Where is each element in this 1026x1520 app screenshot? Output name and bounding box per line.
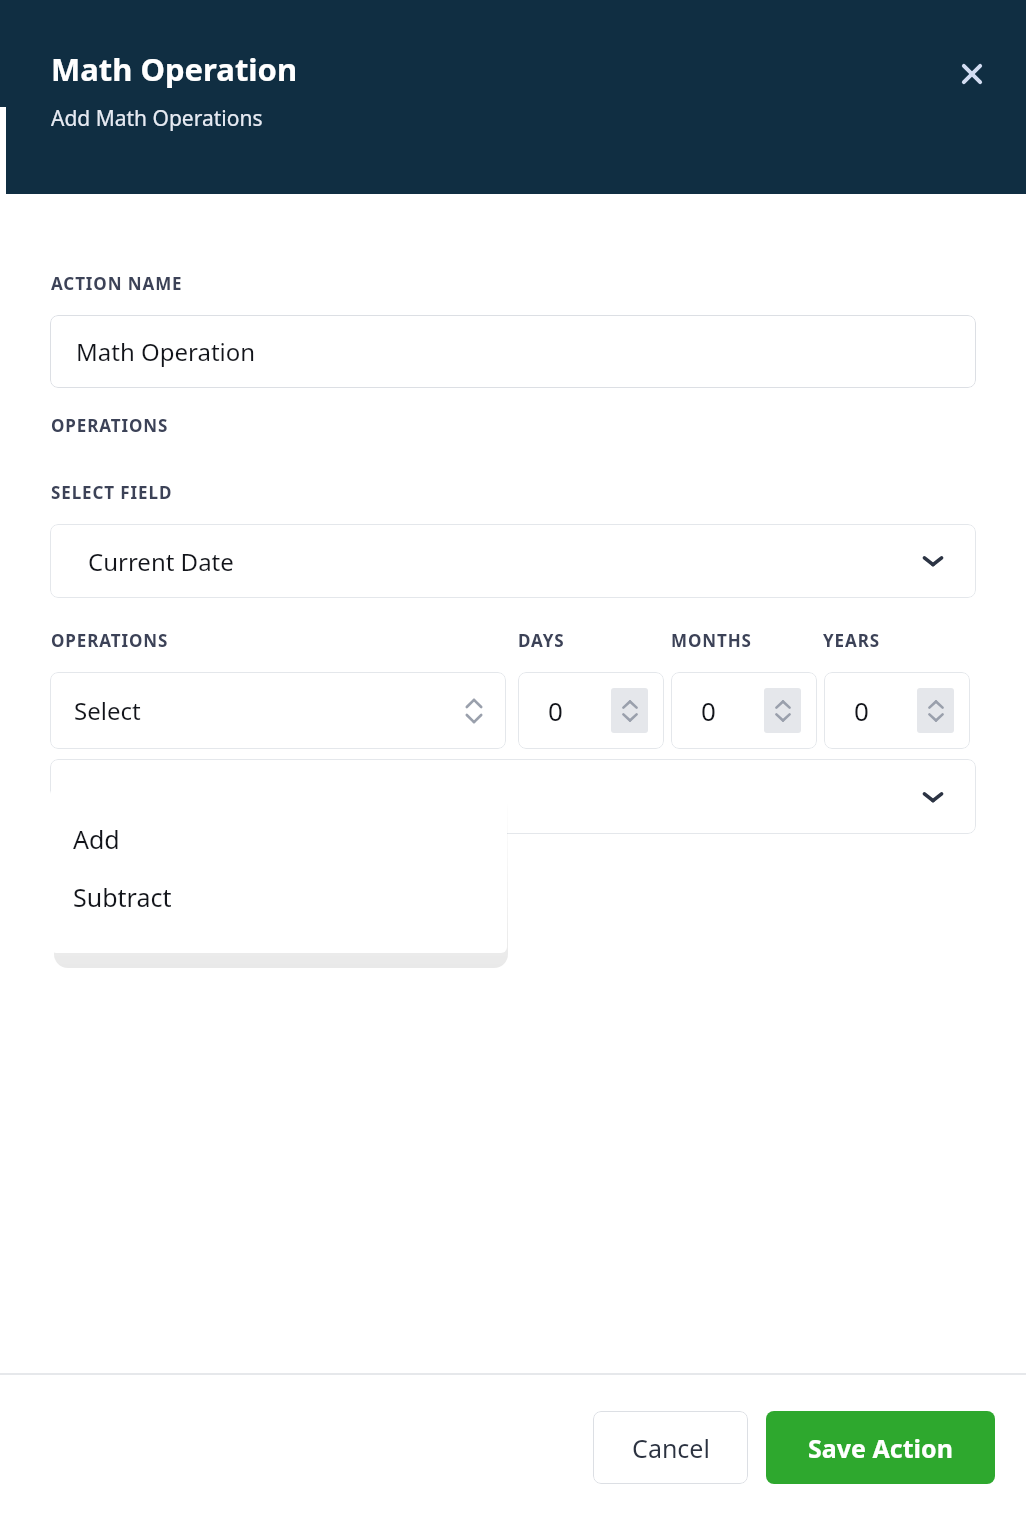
button[interactable]: Add — [50, 810, 507, 868]
button[interactable]: 0 — [671, 672, 817, 749]
staticText: ACTION NAME — [51, 272, 183, 295]
staticText: Subtract — [73, 880, 172, 914]
staticText: Save Action — [808, 1431, 953, 1465]
button[interactable]: Math Operation — [50, 315, 976, 388]
button[interactable]: Close — [944, 46, 1000, 102]
staticText: Add Math Operations — [51, 104, 263, 133]
button[interactable]: Subtract — [50, 868, 507, 926]
staticText: MONTHS — [671, 629, 752, 652]
staticText: 0 — [548, 693, 563, 728]
staticText: OPERATIONS — [51, 629, 169, 652]
button[interactable]: Increment or decrement — [764, 688, 801, 733]
button[interactable]: Cancel — [593, 1411, 748, 1484]
button[interactable]: Current Date — [50, 524, 976, 598]
staticText: Current Date — [88, 545, 234, 578]
staticText: 0 — [701, 693, 716, 728]
button[interactable]: Save Action — [766, 1411, 995, 1484]
button[interactable] — [50, 759, 976, 834]
staticText: Math Operation — [51, 48, 298, 90]
staticText: SELECT FIELD — [51, 481, 173, 504]
staticText: 0 — [854, 693, 869, 728]
staticText: OPERATIONS — [51, 414, 169, 437]
staticText: YEARS — [823, 629, 880, 652]
staticText: Math Operation — [76, 335, 256, 368]
staticText: Cancel — [632, 1431, 710, 1465]
staticText: DAYS — [518, 629, 565, 652]
staticText: Add — [73, 822, 120, 856]
staticText: Select — [74, 694, 141, 727]
button[interactable]: Increment or decrement — [917, 688, 954, 733]
button[interactable]: Select — [50, 672, 506, 749]
button[interactable]: Increment or decrement — [611, 688, 648, 733]
button[interactable]: 0 — [518, 672, 664, 749]
button[interactable]: 0 — [824, 672, 970, 749]
